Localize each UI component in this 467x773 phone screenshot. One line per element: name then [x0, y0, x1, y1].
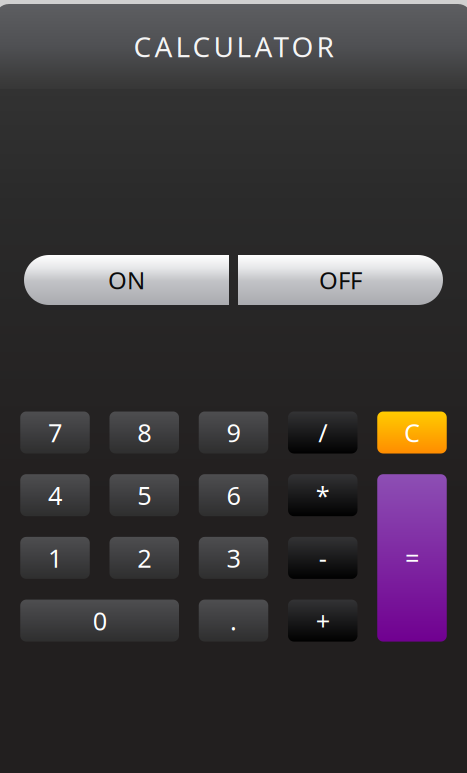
- staticText: 7: [48, 416, 62, 449]
- staticText: -: [319, 541, 327, 575]
- button[interactable]: ON: [24, 255, 229, 305]
- staticText: +: [316, 604, 330, 637]
- staticText: =: [405, 541, 419, 575]
- button[interactable]: 8: [109, 411, 179, 453]
- button[interactable]: /: [288, 411, 357, 453]
- staticText: ON: [108, 264, 145, 296]
- staticText: 4: [48, 478, 62, 512]
- button[interactable]: -: [288, 537, 357, 579]
- staticText: OFF: [319, 264, 362, 296]
- button[interactable]: 1: [20, 537, 90, 579]
- button[interactable]: 7: [20, 411, 90, 453]
- button[interactable]: 2: [109, 537, 179, 579]
- button[interactable]: +: [288, 600, 357, 642]
- staticText: 1: [48, 541, 62, 575]
- staticText: *: [316, 478, 330, 512]
- staticText: 6: [226, 478, 240, 512]
- button[interactable]: 5: [109, 474, 179, 516]
- staticText: /: [318, 416, 327, 449]
- button[interactable]: 9: [199, 411, 268, 453]
- button[interactable]: *: [288, 474, 357, 516]
- button[interactable]: .: [199, 600, 268, 642]
- button[interactable]: 4: [20, 474, 90, 516]
- staticText: .: [230, 604, 237, 637]
- staticText: 8: [137, 416, 151, 449]
- staticText: 9: [226, 416, 240, 449]
- button[interactable]: 0: [20, 600, 179, 642]
- staticText: 3: [226, 541, 240, 575]
- button[interactable]: C: [377, 411, 447, 453]
- staticText: C: [404, 416, 420, 449]
- button[interactable]: 6: [199, 474, 268, 516]
- staticText: 2: [137, 541, 151, 575]
- staticText: CALCULATOR: [133, 28, 333, 65]
- button[interactable]: 3: [199, 537, 268, 579]
- staticText: 5: [137, 478, 151, 512]
- button[interactable]: =: [377, 474, 447, 642]
- staticText: 0: [93, 604, 107, 637]
- button[interactable]: OFF: [238, 255, 443, 305]
